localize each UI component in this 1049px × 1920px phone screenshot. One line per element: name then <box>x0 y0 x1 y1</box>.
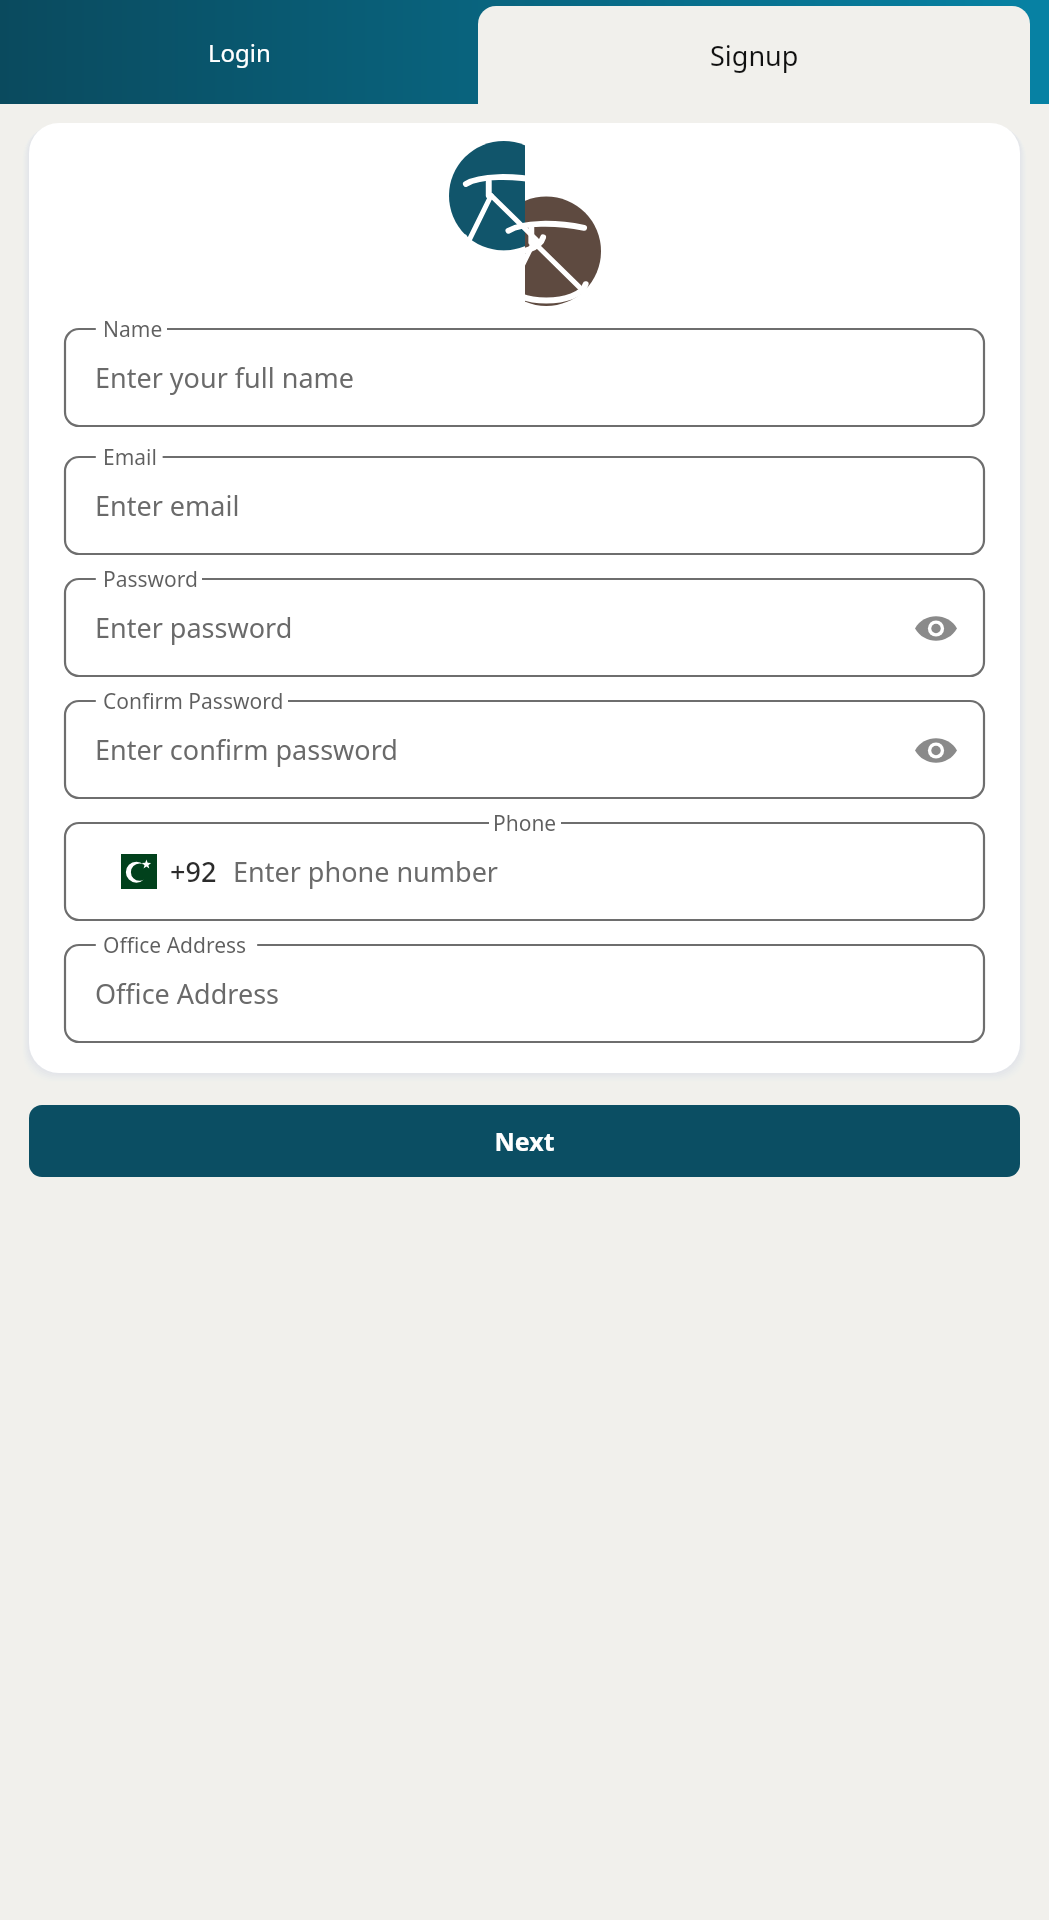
button[interactable]: Signup <box>478 6 1030 104</box>
button[interactable]: Login <box>0 0 478 104</box>
button[interactable]: Next <box>29 1105 1020 1177</box>
staticText: Email <box>103 443 157 471</box>
staticText: Next <box>494 1124 555 1158</box>
staticText: Name <box>103 315 163 343</box>
staticText: Enter password <box>95 609 910 646</box>
staticText: Office Address <box>95 975 962 1012</box>
staticText: Phone <box>493 809 557 837</box>
staticText: Enter phone number <box>233 853 962 890</box>
staticText: Signup <box>710 37 799 74</box>
staticText: Password <box>103 565 198 593</box>
staticText: Enter email <box>95 487 962 524</box>
button[interactable]: Password <box>65 565 984 676</box>
button[interactable]: Phone <box>65 809 984 920</box>
staticText: Enter confirm password <box>95 731 910 768</box>
button[interactable]: Name <box>65 315 984 426</box>
button[interactable]: Confirm Password <box>65 687 984 798</box>
button[interactable]: Show password <box>910 724 962 776</box>
button[interactable]: Office Address <box>65 931 984 1042</box>
staticText: Enter your full name <box>95 359 962 396</box>
staticText: Office Address <box>103 931 247 959</box>
staticText: Confirm Password <box>103 687 284 715</box>
button[interactable]: Show password <box>910 602 962 654</box>
button[interactable]: Email <box>65 443 984 554</box>
staticText: +92 <box>170 853 217 890</box>
staticText: Login <box>208 36 271 69</box>
